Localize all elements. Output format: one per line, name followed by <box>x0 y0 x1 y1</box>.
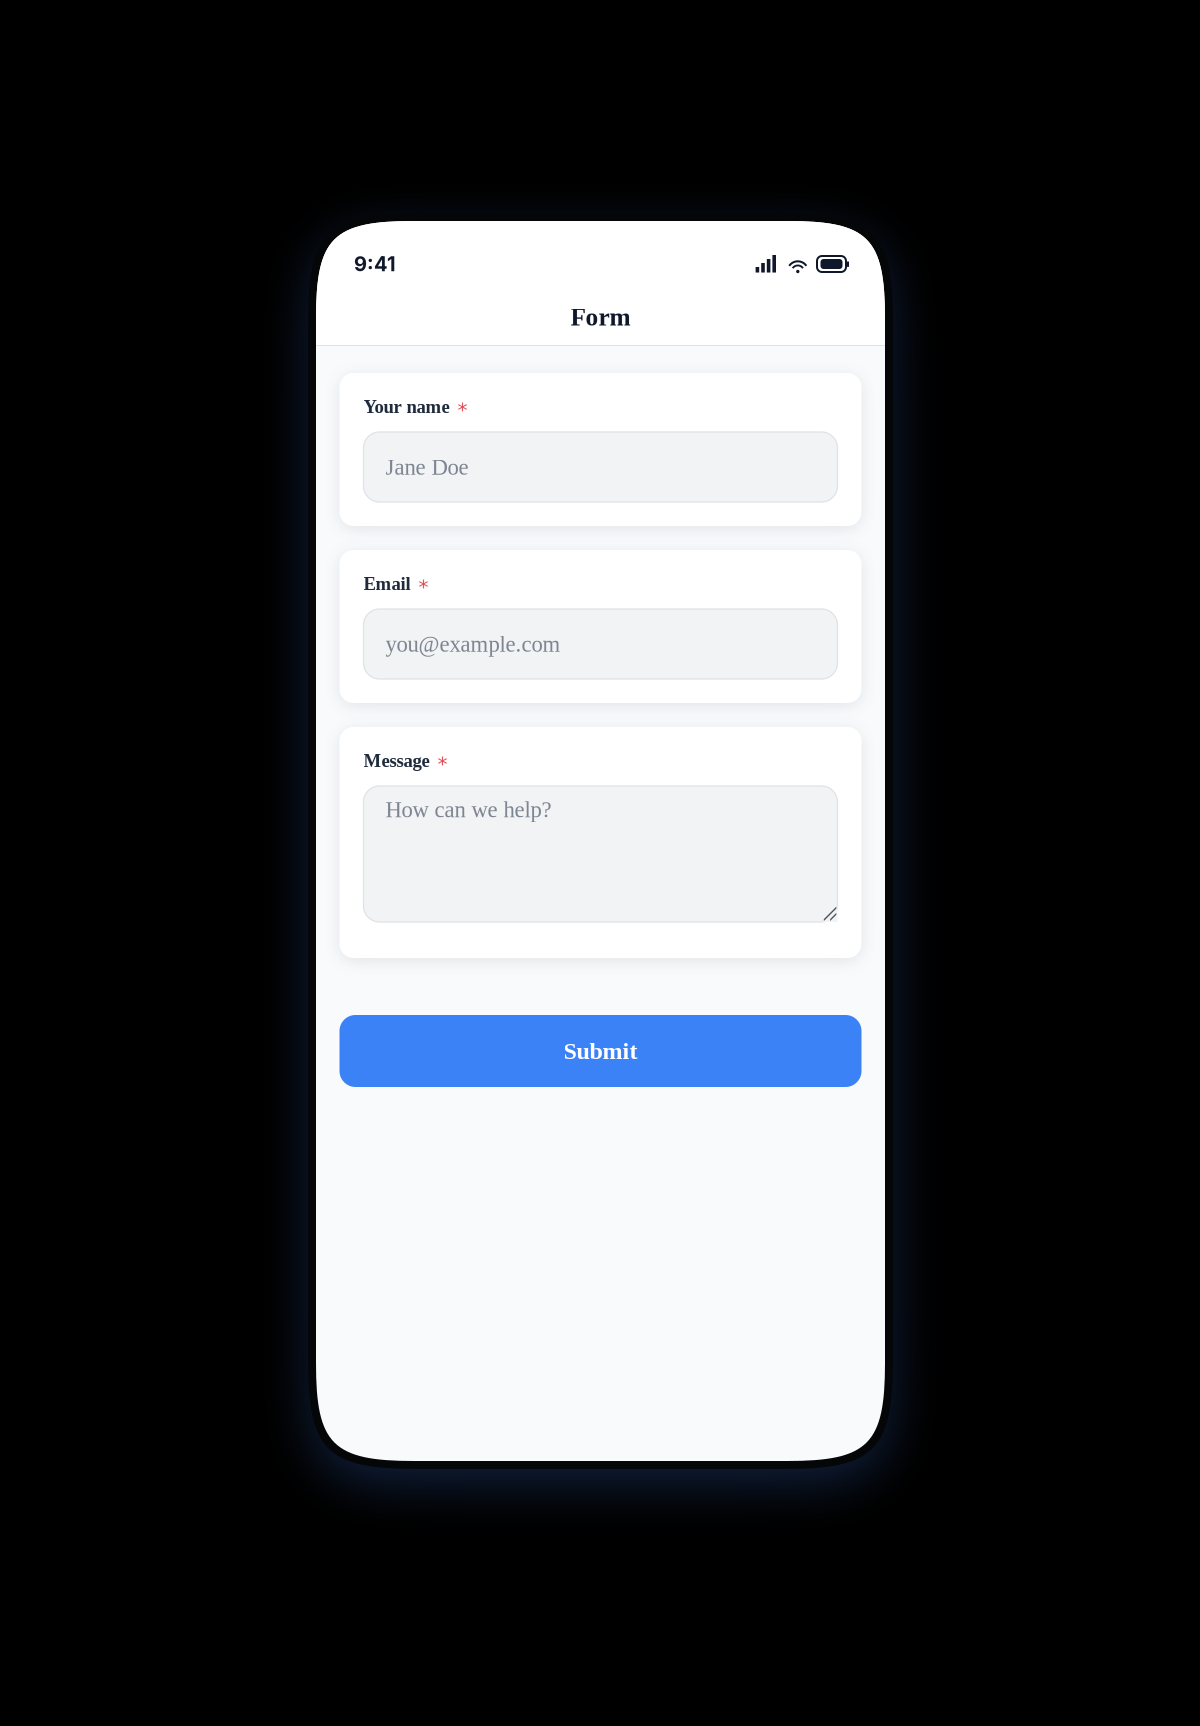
staticText: * <box>457 398 467 421</box>
staticText: * <box>418 575 428 598</box>
staticText: Email <box>363 573 410 594</box>
staticText: Submit <box>563 1038 637 1064</box>
staticText: 9:41 <box>354 252 396 276</box>
staticText: Message <box>363 750 429 771</box>
staticText: How can we help? <box>385 797 551 822</box>
staticText: Form <box>570 303 630 331</box>
staticText: Jane Doe <box>385 454 468 479</box>
staticText: * <box>437 752 447 775</box>
staticText: you@example.com <box>385 631 560 656</box>
staticText: Your name <box>363 396 449 417</box>
button[interactable]: Submit <box>339 1015 861 1087</box>
